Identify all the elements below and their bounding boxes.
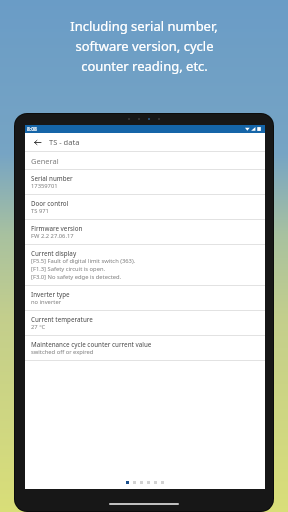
staticText: [F5.5] Fault of digital limit switch (36… bbox=[31, 257, 136, 265]
button[interactable]: Maintenance cycle counter current value bbox=[25, 336, 265, 360]
staticText: no inverter bbox=[31, 298, 62, 306]
staticText: Maintenance cycle counter current value bbox=[31, 340, 152, 348]
staticText: [F3.0] No safety edge is detected. bbox=[31, 273, 122, 281]
staticText: 17359701 bbox=[31, 182, 58, 190]
staticText: FW 2.2 27.06.17 bbox=[31, 232, 74, 240]
button[interactable]: Back bbox=[30, 135, 44, 149]
button[interactable]: Door control bbox=[25, 195, 265, 219]
staticText: Firmware version bbox=[31, 224, 83, 232]
staticText: Inverter type bbox=[31, 290, 70, 298]
staticText: TS - data bbox=[49, 137, 80, 147]
staticText: 8:08 bbox=[27, 126, 37, 133]
staticText: Current display bbox=[31, 249, 77, 257]
staticText: TS 971 bbox=[31, 207, 49, 215]
staticText: General bbox=[31, 156, 59, 166]
button[interactable]: Firmware version bbox=[25, 220, 265, 244]
staticText: 27 °C bbox=[31, 323, 46, 331]
staticText: software version, cycle bbox=[75, 37, 214, 55]
button[interactable]: Inverter type bbox=[25, 286, 265, 310]
staticText: Door control bbox=[31, 199, 69, 207]
staticText: Current temperature bbox=[31, 315, 93, 323]
staticText: counter reading, etc. bbox=[81, 57, 208, 75]
staticText: Serial number bbox=[31, 174, 73, 182]
button[interactable]: Current display bbox=[25, 245, 265, 285]
staticText: switched off or expired bbox=[31, 348, 94, 356]
staticText: [F1.3] Safety circuit is open. bbox=[31, 265, 106, 273]
button[interactable]: Serial number bbox=[25, 170, 265, 194]
button[interactable]: Current temperature bbox=[25, 311, 265, 335]
staticText: Including serial number, bbox=[70, 17, 218, 35]
